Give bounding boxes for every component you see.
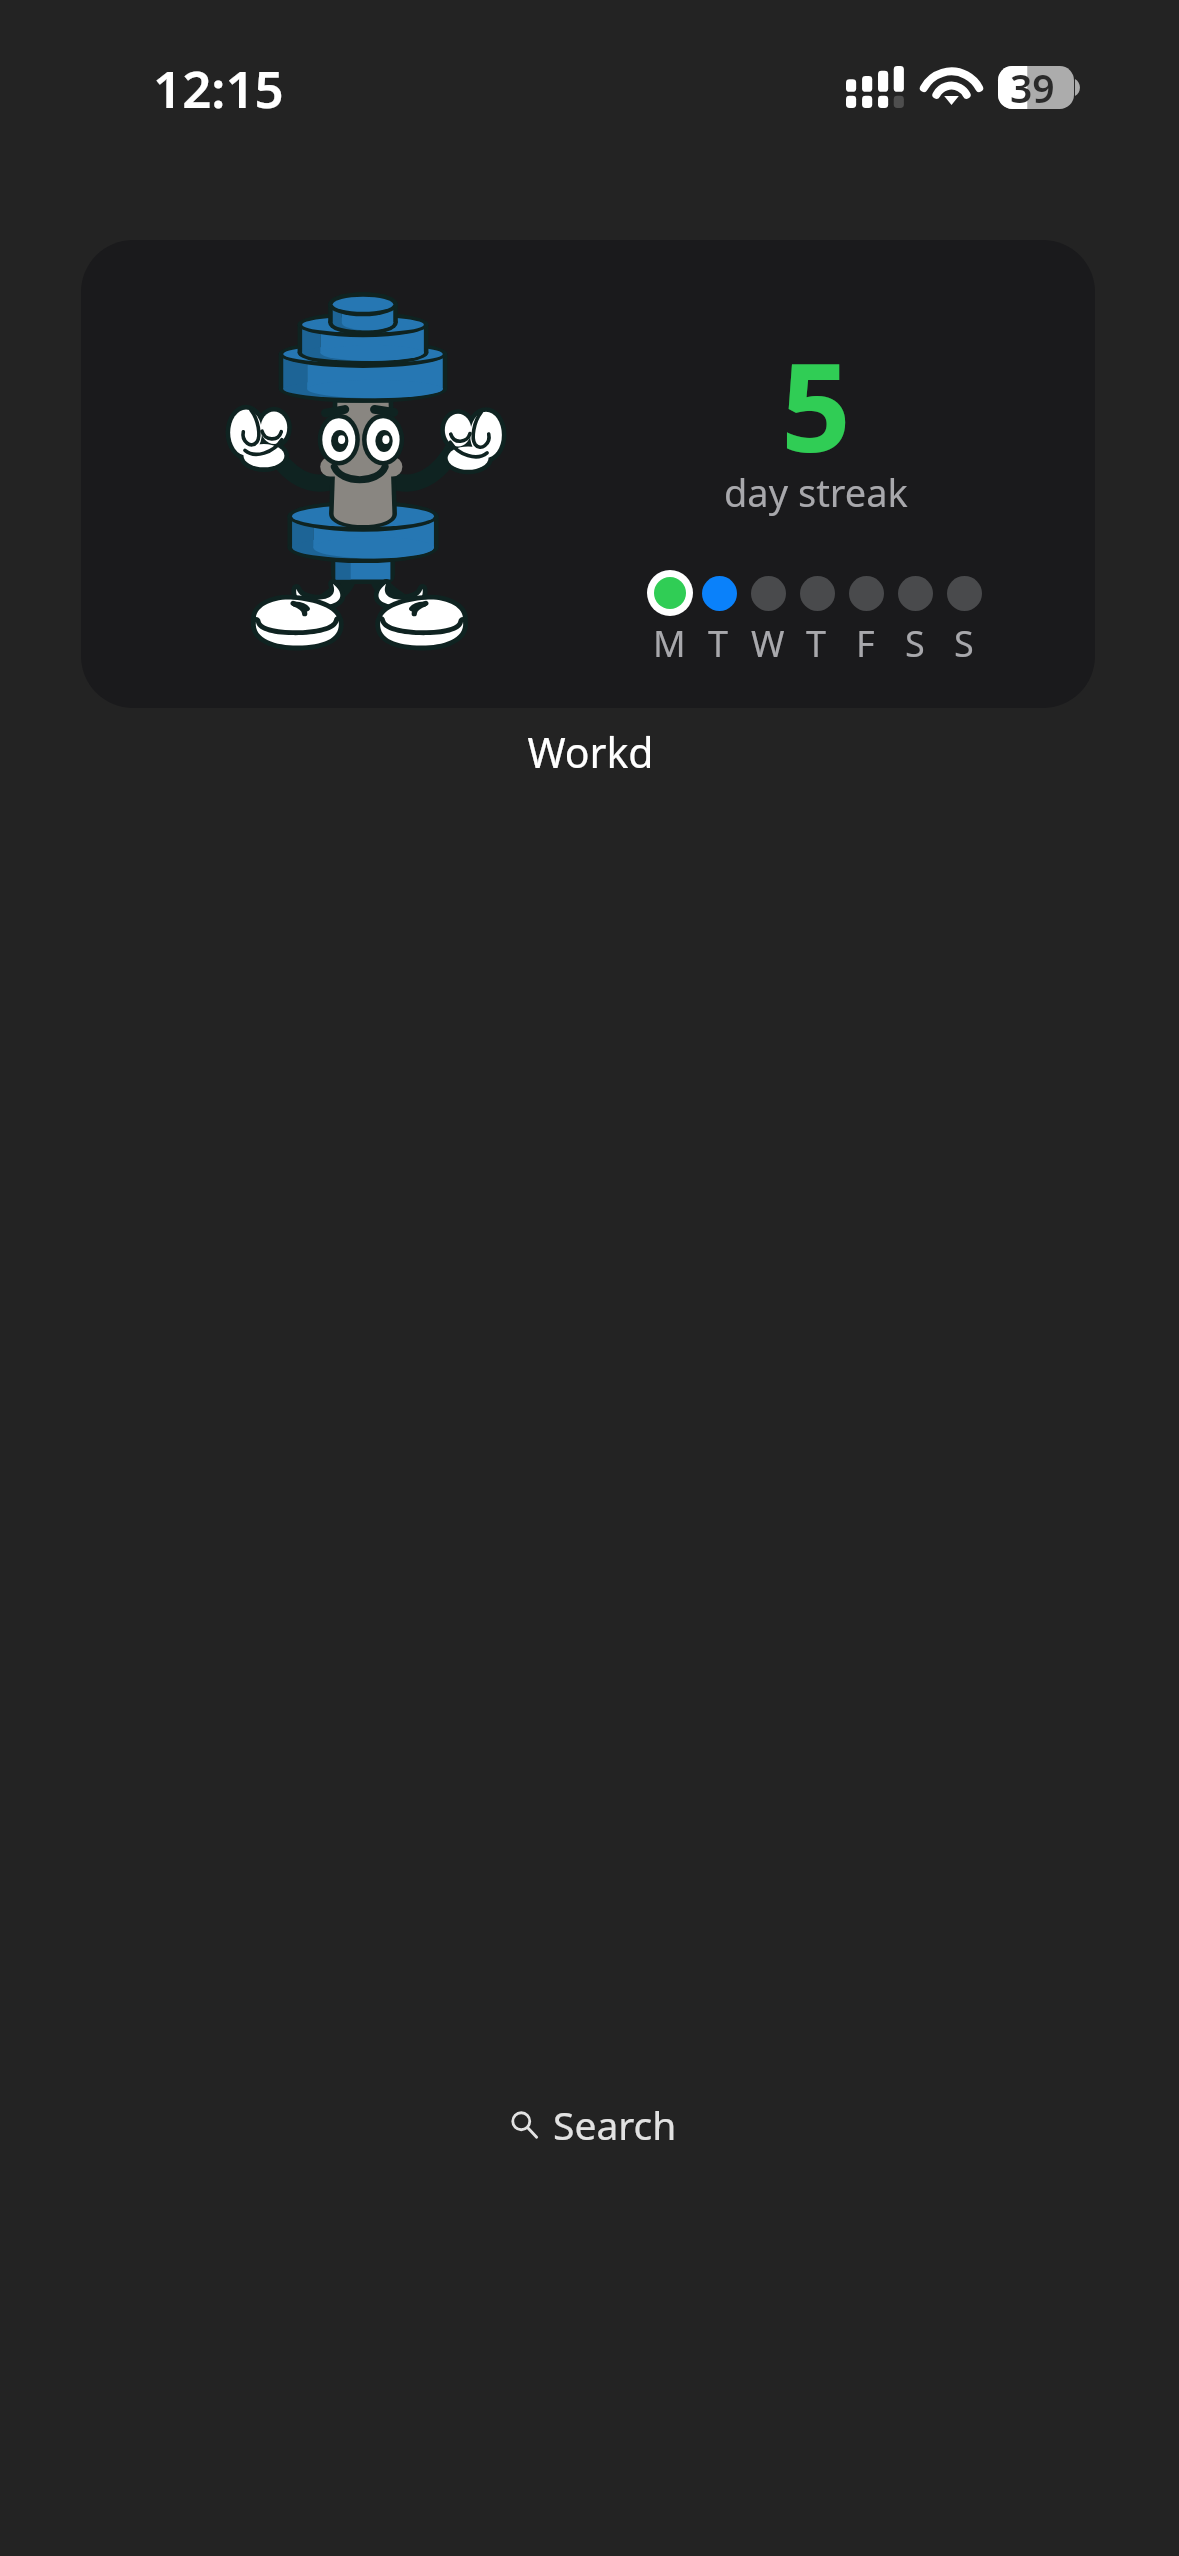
button[interactable]: Workd	[527, 724, 654, 780]
button[interactable]: T	[792, 570, 841, 668]
staticText: T	[806, 619, 827, 668]
staticText: S	[905, 619, 925, 668]
staticText: 39	[1010, 61, 1055, 114]
button[interactable]: Workd dumbbell mascot	[81, 240, 1095, 708]
staticText: day streak	[724, 466, 908, 518]
button[interactable]: Search	[487, 2086, 701, 2163]
staticText: T	[708, 619, 729, 668]
staticText: F	[856, 619, 875, 668]
button[interactable]: M	[645, 570, 694, 668]
other: Cellular signal	[846, 66, 904, 108]
other: Wi-Fi	[925, 65, 978, 108]
other: Workd dumbbell mascot	[229, 293, 497, 648]
staticText: Search	[553, 2098, 677, 2151]
button[interactable]: T	[694, 570, 743, 668]
staticText: M	[653, 619, 686, 668]
button[interactable]: S	[890, 570, 939, 668]
other: Battery 39 percent	[998, 66, 1082, 119]
staticText: S	[954, 619, 974, 668]
staticText: 12:15	[153, 53, 284, 122]
staticText: W	[751, 619, 785, 668]
button[interactable]: F	[841, 570, 890, 668]
button[interactable]: W	[743, 570, 792, 668]
button[interactable]: S	[939, 570, 988, 668]
staticText: 5	[781, 322, 851, 488]
